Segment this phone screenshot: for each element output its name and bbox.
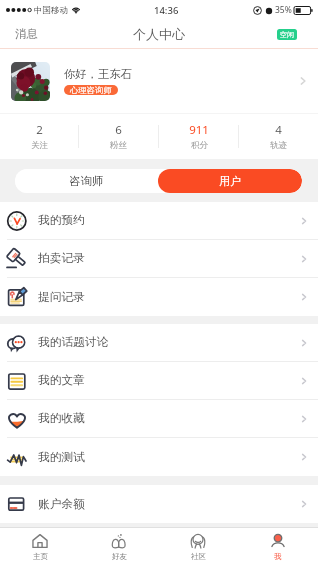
staticText: 拍卖记录 xyxy=(38,251,85,266)
button[interactable]: 用户 xyxy=(158,169,302,193)
button[interactable]: 你好，王东石 xyxy=(0,49,318,113)
staticText: 消息 xyxy=(15,27,38,41)
staticText: 轨迹 xyxy=(270,140,287,151)
button[interactable]: 空闲 xyxy=(277,29,297,40)
button[interactable]: 我的预约 xyxy=(0,202,318,239)
staticText: 我 xyxy=(274,552,282,561)
staticText: 积分 xyxy=(191,140,208,151)
staticText: 我的测试 xyxy=(38,450,85,465)
staticText: 空闲 xyxy=(280,30,294,39)
button[interactable]: 主页 xyxy=(16,528,64,565)
button[interactable]: 4 xyxy=(270,122,287,151)
button[interactable]: 我 xyxy=(254,528,302,565)
button[interactable]: 咨询师 xyxy=(15,169,158,193)
button[interactable]: 拍卖记录 xyxy=(0,240,318,277)
staticText: 账户余额 xyxy=(38,497,85,512)
button[interactable]: 账户余额 xyxy=(0,485,318,523)
staticText: 你好，王东石 xyxy=(64,67,132,81)
staticText: 我的话题讨论 xyxy=(38,335,109,350)
staticText: 关注 xyxy=(31,140,48,151)
button[interactable]: 911 xyxy=(189,122,209,151)
staticText: 我的文章 xyxy=(38,373,85,388)
staticText: 社区 xyxy=(191,552,206,561)
staticText: 用户 xyxy=(219,174,241,188)
staticText: 14:36 xyxy=(154,4,179,17)
staticText: 心理咨询师 xyxy=(70,85,112,95)
staticText: 35% xyxy=(275,4,292,16)
staticText: 911 xyxy=(189,122,209,138)
staticText: 中国移动 xyxy=(34,5,68,16)
staticText: 我的收藏 xyxy=(38,411,85,426)
staticText: 粉丝 xyxy=(110,140,127,151)
staticText: 好友 xyxy=(112,552,127,561)
button[interactable]: 我的测试 xyxy=(0,438,318,476)
button[interactable]: 社区 xyxy=(174,528,222,565)
staticText: 4 xyxy=(275,122,282,138)
staticText: 2 xyxy=(36,122,43,138)
staticText: 主页 xyxy=(33,552,48,561)
button[interactable]: 我的收藏 xyxy=(0,400,318,437)
button[interactable]: 2 xyxy=(31,122,48,151)
staticText: 咨询师 xyxy=(69,174,104,188)
button[interactable]: 提问记录 xyxy=(0,278,318,316)
staticText: 个人中心 xyxy=(133,26,185,42)
button[interactable]: 好友 xyxy=(95,528,143,565)
button[interactable]: 我的话题讨论 xyxy=(0,324,318,361)
button[interactable]: 6 xyxy=(110,122,127,151)
staticText: 提问记录 xyxy=(38,290,85,305)
button[interactable]: 消息 xyxy=(0,20,50,48)
button[interactable]: 我的文章 xyxy=(0,362,318,399)
staticText: 我的预约 xyxy=(38,213,85,228)
staticText: 6 xyxy=(115,122,122,138)
